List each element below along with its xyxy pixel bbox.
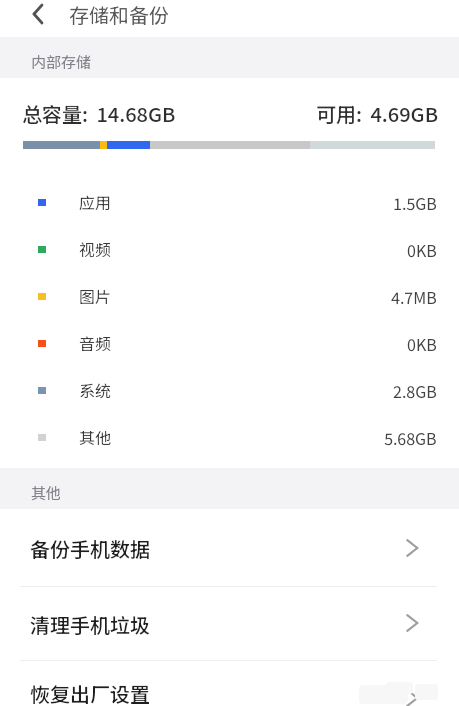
- staticText: 清理手机垃圾: [30, 610, 150, 639]
- staticText: 恢复出厂设置: [30, 679, 150, 706]
- button[interactable]: 图片: [0, 273, 459, 320]
- staticText: 0KB: [407, 238, 437, 261]
- staticText: 视频: [79, 237, 112, 260]
- staticText: 总容量: 14.68GB: [22, 99, 176, 128]
- staticText: 2.8GB: [393, 379, 437, 402]
- staticText: 4.7MB: [391, 285, 437, 308]
- staticText: 内部存储: [31, 51, 92, 73]
- staticText: 应用: [79, 190, 112, 213]
- staticText: 0KB: [407, 332, 437, 355]
- button[interactable]: 恢复出厂设置: [0, 661, 459, 706]
- staticText: 存储和备份: [69, 0, 169, 29]
- button[interactable]: 视频: [0, 226, 459, 273]
- button[interactable]: 其他: [0, 414, 459, 461]
- button[interactable]: 应用: [0, 179, 459, 226]
- staticText: 5.68GB: [384, 426, 437, 449]
- button[interactable]: 系统: [0, 367, 459, 414]
- staticText: 1.5GB: [393, 191, 437, 214]
- staticText: 可用: 4.69GB: [316, 99, 438, 128]
- staticText: 图片: [79, 284, 112, 307]
- staticText: 系统: [79, 378, 112, 401]
- button[interactable]: 音频: [0, 320, 459, 367]
- staticText: 其他: [79, 425, 112, 448]
- staticText: 音频: [79, 331, 112, 354]
- button[interactable]: 清理手机垃圾: [0, 587, 459, 660]
- staticText: 备份手机数据: [30, 534, 150, 563]
- button[interactable]: 备份手机数据: [0, 509, 459, 586]
- button[interactable]: Back: [14, 0, 50, 32]
- staticText: 其他: [31, 482, 62, 504]
